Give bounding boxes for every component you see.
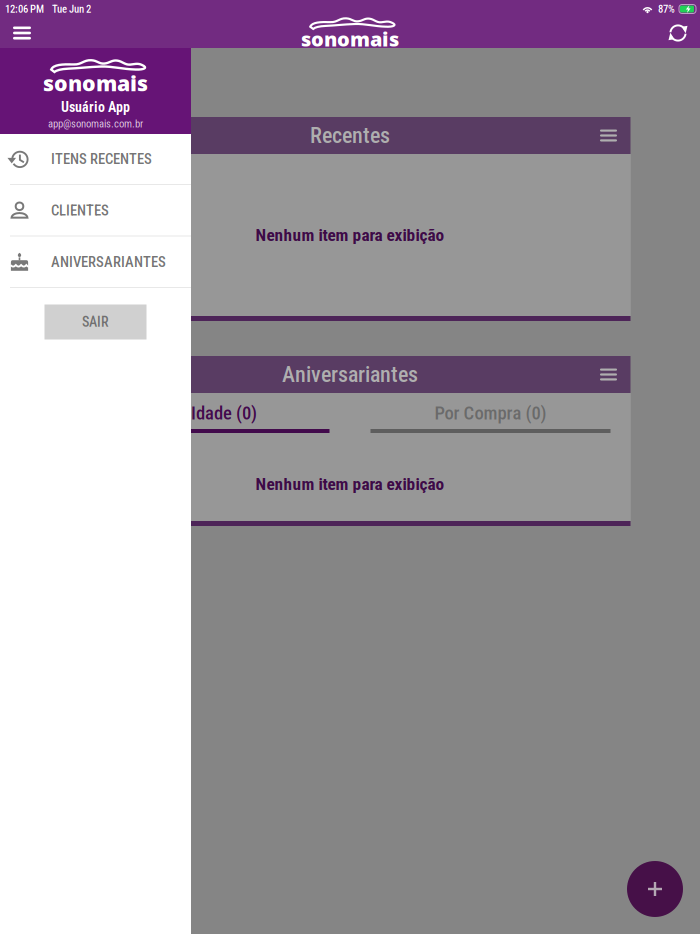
button[interactable]: ITENS RECENTES <box>0 134 191 185</box>
button[interactable]: ANIVERSARIANTES <box>0 237 191 288</box>
staticText: Nenhum item para exibição <box>255 474 444 494</box>
staticText: Por Idade (0) <box>162 402 257 424</box>
staticText: 12:06 PM <box>5 3 44 15</box>
button[interactable]: Opções de Aniversariantes <box>586 356 630 393</box>
staticText: sonomais <box>301 25 399 52</box>
staticText: Usuário App <box>61 99 130 115</box>
staticText: 87% <box>658 3 675 15</box>
staticText: CLIENTES <box>51 202 109 219</box>
button[interactable]: CLIENTES <box>0 185 191 237</box>
button[interactable]: Adicionar <box>627 861 683 917</box>
staticText: Nenhum item para exibição <box>255 225 444 245</box>
button[interactable]: Por Compra (0) <box>370 393 610 433</box>
button[interactable]: Atualizar <box>656 18 700 48</box>
staticText: Tue Jun 2 <box>52 3 91 15</box>
staticText: Recentes <box>310 123 390 148</box>
button[interactable]: Abrir menu <box>0 18 44 48</box>
staticText: sonomais <box>43 69 148 97</box>
button[interactable]: Por Idade (0) <box>89 393 329 433</box>
staticText: ANIVERSARIANTES <box>51 253 166 271</box>
staticText: Por Compra (0) <box>434 402 546 424</box>
button[interactable]: SAIR <box>44 304 146 339</box>
button[interactable]: Opções de Recentes <box>586 117 630 154</box>
staticText: ITENS RECENTES <box>51 150 152 168</box>
staticText: SAIR <box>82 314 109 330</box>
staticText: Aniversariantes <box>282 362 418 387</box>
staticText: app@sonomais.com.br <box>48 117 143 130</box>
